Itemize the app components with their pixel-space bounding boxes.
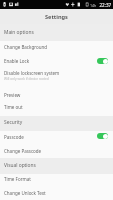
staticText: 14h (90, 3, 97, 8)
button[interactable]: Preview (0, 89, 113, 102)
staticText: Time out (4, 104, 23, 110)
button[interactable]: Change Passcode (0, 144, 113, 158)
staticText: Passcode (4, 134, 24, 140)
button[interactable]: Enable Lock (0, 54, 113, 68)
button[interactable]: Passcode (0, 131, 113, 144)
button[interactable]: Change Unlock Text (0, 187, 113, 200)
button[interactable]: Time out (0, 102, 113, 116)
staticText: Main options (4, 29, 34, 36)
staticText: Enable Lock (4, 58, 30, 64)
staticText: Preview (4, 92, 21, 98)
staticText: Disable lockscreen system (4, 70, 60, 76)
staticText: Change Passcode (4, 148, 42, 154)
staticText: Change Background (4, 44, 48, 50)
staticText: Change Unlock Text (4, 190, 46, 196)
button[interactable]: Disable lockscreen system (0, 68, 113, 89)
staticText: Time Format (4, 176, 31, 182)
staticText: Visual options (4, 162, 36, 169)
staticText: Security (4, 119, 23, 126)
staticText: 22:37 (97, 2, 112, 8)
button[interactable]: Toggle Enable Lock (97, 58, 108, 64)
button[interactable]: Time Format (0, 174, 113, 187)
staticText: Will only work if device rooted (4, 77, 49, 81)
button[interactable]: Change Background (0, 41, 113, 54)
button[interactable]: Toggle Passcode (97, 133, 108, 139)
staticText: Settings (45, 13, 68, 21)
